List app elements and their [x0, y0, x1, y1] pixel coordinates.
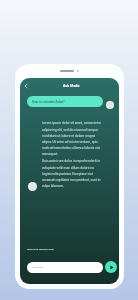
staticText: Type here — [32, 266, 43, 269]
staticText: Lorem ipsum dolor sit amet, consectetur … — [42, 121, 102, 155]
staticText: How to calculate Zakat? — [32, 100, 65, 104]
staticText: Duis aute irure dolor in reprehenderit i… — [42, 159, 102, 187]
staticText: Enter your question here — [27, 248, 54, 251]
button[interactable]: Type here — [27, 262, 103, 273]
button[interactable]: How to calculate Zakat? — [27, 96, 103, 107]
button[interactable]: Send — [105, 261, 117, 273]
staticText: Ask Mode — [63, 83, 80, 88]
button[interactable]: Back — [22, 82, 30, 90]
